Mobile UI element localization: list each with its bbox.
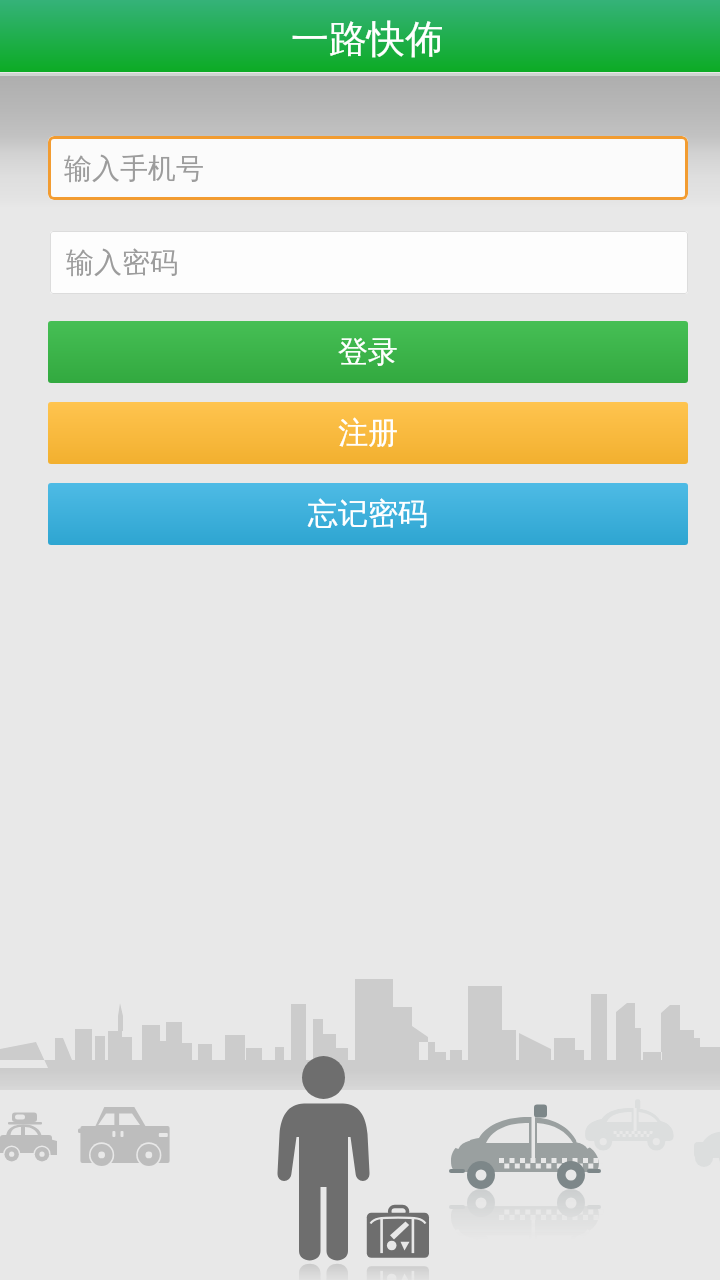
button[interactable]: 注册 [48,402,688,464]
button[interactable]: 登录 [48,321,688,383]
staticText: 一路快佈 [291,15,443,63]
staticText: 输入手机号 [64,151,204,186]
staticText: 注册 [338,414,398,452]
staticText: 输入密码 [66,245,178,280]
button[interactable]: 忘记密码 [48,483,688,545]
button[interactable]: 输入密码 [50,231,688,294]
staticText: 忘记密码 [308,495,428,533]
staticText: 登录 [338,333,398,371]
button[interactable]: 输入手机号 [48,136,688,200]
